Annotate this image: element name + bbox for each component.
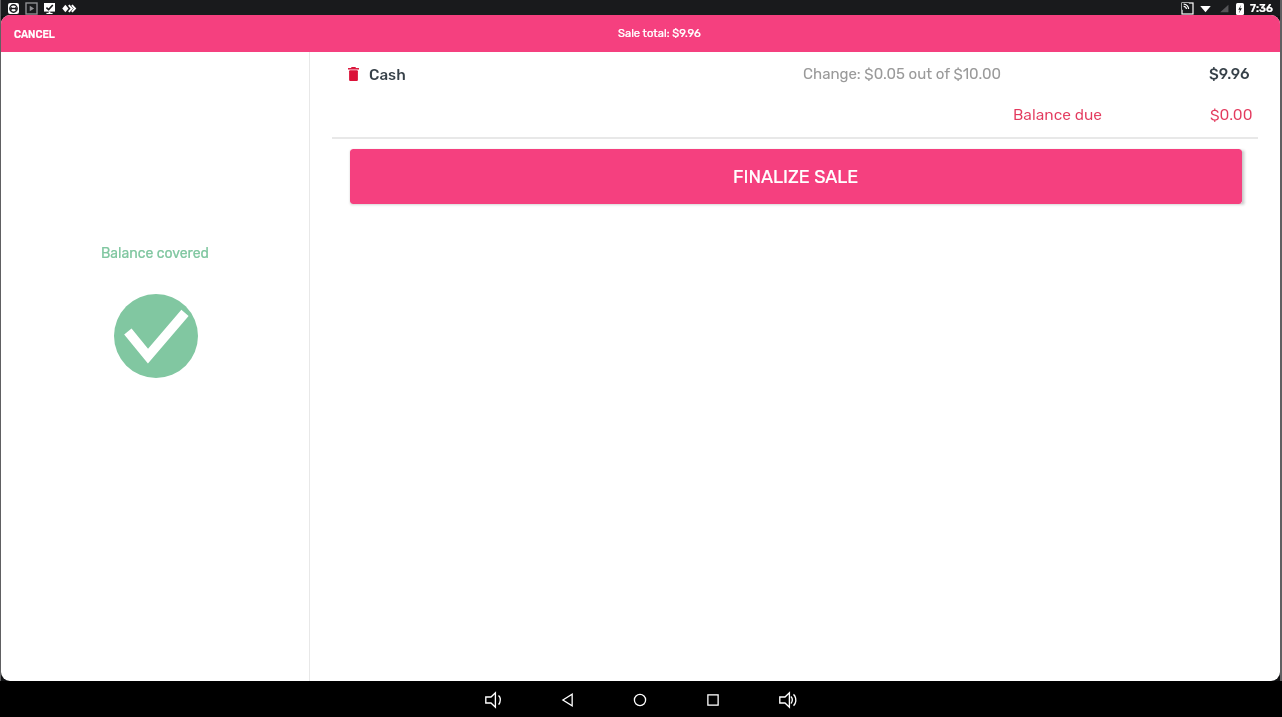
staticText: Change: $0.05 out of $10.00 bbox=[803, 65, 1001, 83]
staticText: Balance covered bbox=[101, 245, 209, 262]
staticText: FINALIZE SALE bbox=[733, 166, 859, 187]
staticText: Cash bbox=[369, 66, 406, 84]
staticText: CANCEL bbox=[14, 28, 55, 40]
button[interactable]: Volume up bbox=[774, 687, 800, 713]
button[interactable]: Home bbox=[627, 687, 653, 713]
button[interactable]: CANCEL bbox=[1, 15, 68, 52]
button[interactable]: Back bbox=[555, 687, 581, 713]
button[interactable]: Remove Cash payment bbox=[341, 62, 365, 86]
staticText: Sale total: $9.96 bbox=[618, 27, 701, 40]
button[interactable]: Recent apps bbox=[700, 687, 726, 713]
staticText: $0.00 bbox=[1210, 106, 1253, 124]
button[interactable]: Volume down bbox=[480, 687, 506, 713]
button[interactable]: FINALIZE SALE bbox=[350, 149, 1242, 204]
staticText: Balance due bbox=[1013, 106, 1102, 124]
staticText: $9.96 bbox=[1209, 65, 1250, 83]
staticText: 7:36 bbox=[1250, 2, 1273, 15]
